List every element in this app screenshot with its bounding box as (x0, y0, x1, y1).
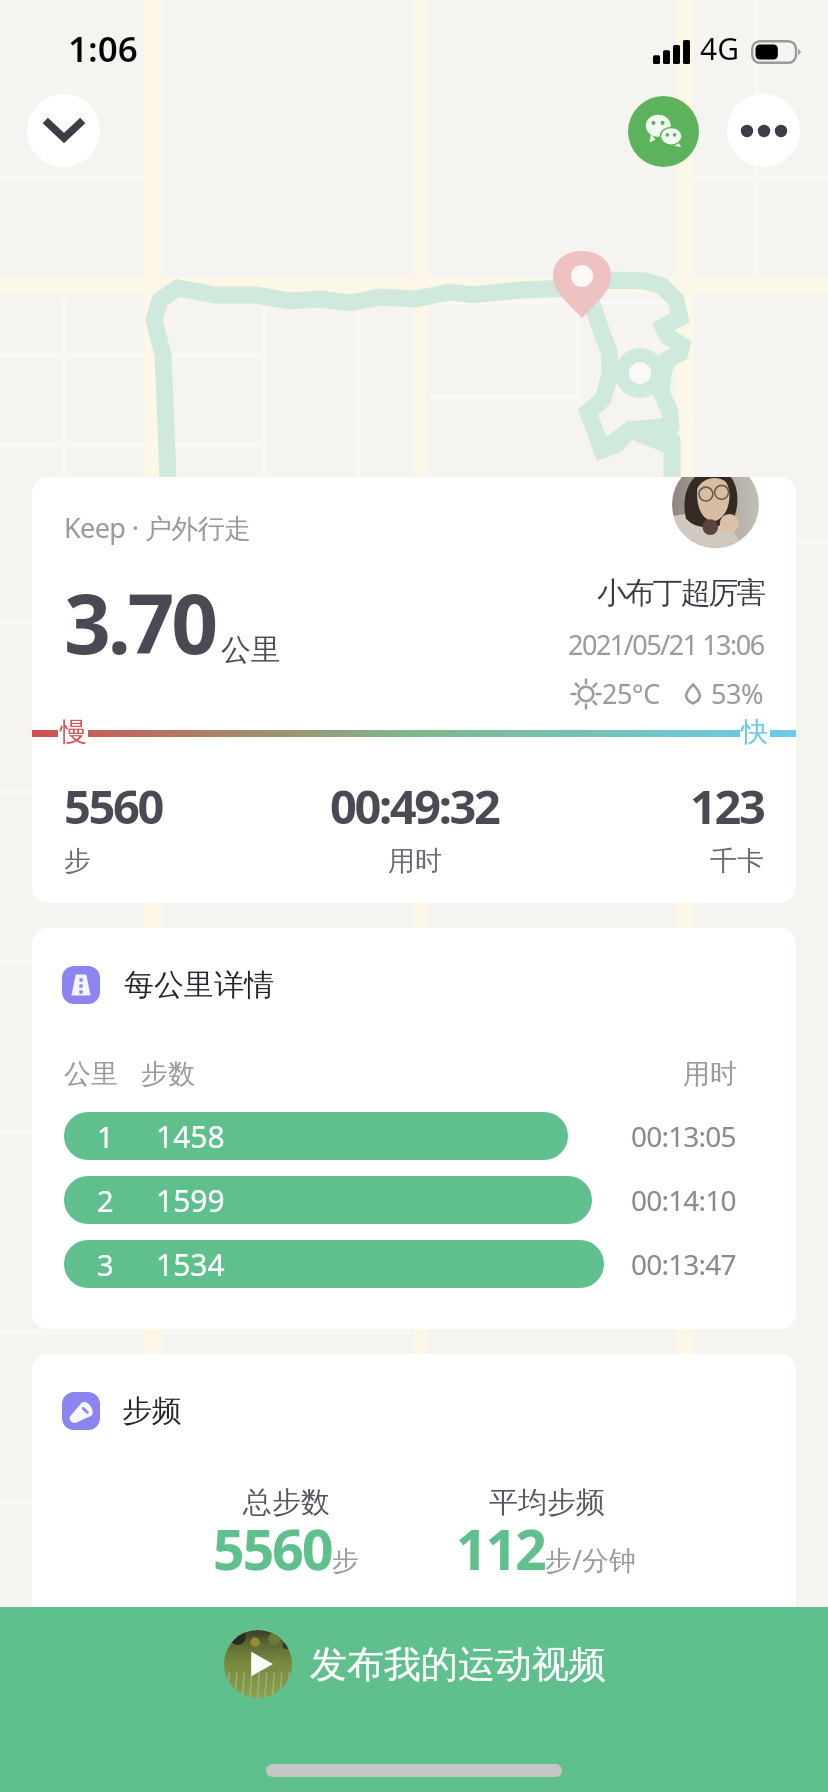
button[interactable]: Share to WeChat (628, 96, 699, 167)
staticText: 公里 (64, 1057, 118, 1091)
staticText: 3 (97, 1245, 114, 1284)
staticText: 1:06 (68, 25, 138, 73)
staticText: 4G (700, 28, 739, 69)
staticText: 发布我的运动视频 (310, 1641, 606, 1688)
staticText: 1534 (156, 1244, 225, 1285)
staticText: 步 (332, 1544, 359, 1578)
button[interactable]: 1 (64, 1112, 568, 1160)
button[interactable]: 3 (64, 1240, 604, 1288)
staticText: 1599 (156, 1180, 225, 1221)
staticText: 步/分钟 (545, 1541, 637, 1578)
staticText: 用时 (388, 844, 442, 878)
staticText: 5560 (64, 774, 162, 838)
staticText: 小布丁超厉害 (597, 574, 764, 612)
staticText: 千卡 (710, 844, 764, 878)
staticText: 25°C (602, 675, 660, 712)
staticText: 平均步频 (489, 1484, 605, 1521)
button[interactable]: 2 (64, 1176, 592, 1224)
button[interactable]: 发布我的运动视频 (0, 1607, 828, 1792)
staticText: 2021/05/21 13:06 (568, 626, 764, 663)
staticText: Keep · 户外行走 (64, 509, 251, 546)
staticText: 2 (97, 1181, 114, 1220)
staticText: 步 (64, 844, 91, 878)
staticText: 总步数 (243, 1484, 330, 1521)
staticText: 步数 (141, 1057, 195, 1091)
staticText: 步频 (122, 1392, 182, 1430)
staticText: 5560 (213, 1511, 332, 1586)
staticText: 用时 (683, 1057, 737, 1091)
staticText: 53% (711, 675, 764, 712)
button[interactable]: Collapse (27, 94, 100, 167)
staticText: 00:13:47 (631, 1245, 736, 1283)
staticText: 快 (741, 715, 768, 749)
staticText: 00:13:05 (631, 1117, 736, 1155)
staticText: 123 (690, 774, 764, 838)
staticText: 1458 (156, 1116, 225, 1157)
staticText: 1 (97, 1117, 114, 1156)
staticText: 00:49:32 (330, 774, 499, 838)
button[interactable]: More options (727, 94, 800, 167)
staticText: 公里 (221, 631, 281, 669)
staticText: 00:14:10 (631, 1181, 736, 1219)
staticText: 3.70 (64, 566, 215, 678)
staticText: 112 (456, 1511, 545, 1586)
staticText: 每公里详情 (124, 966, 274, 1004)
staticText: 慢 (60, 715, 87, 749)
